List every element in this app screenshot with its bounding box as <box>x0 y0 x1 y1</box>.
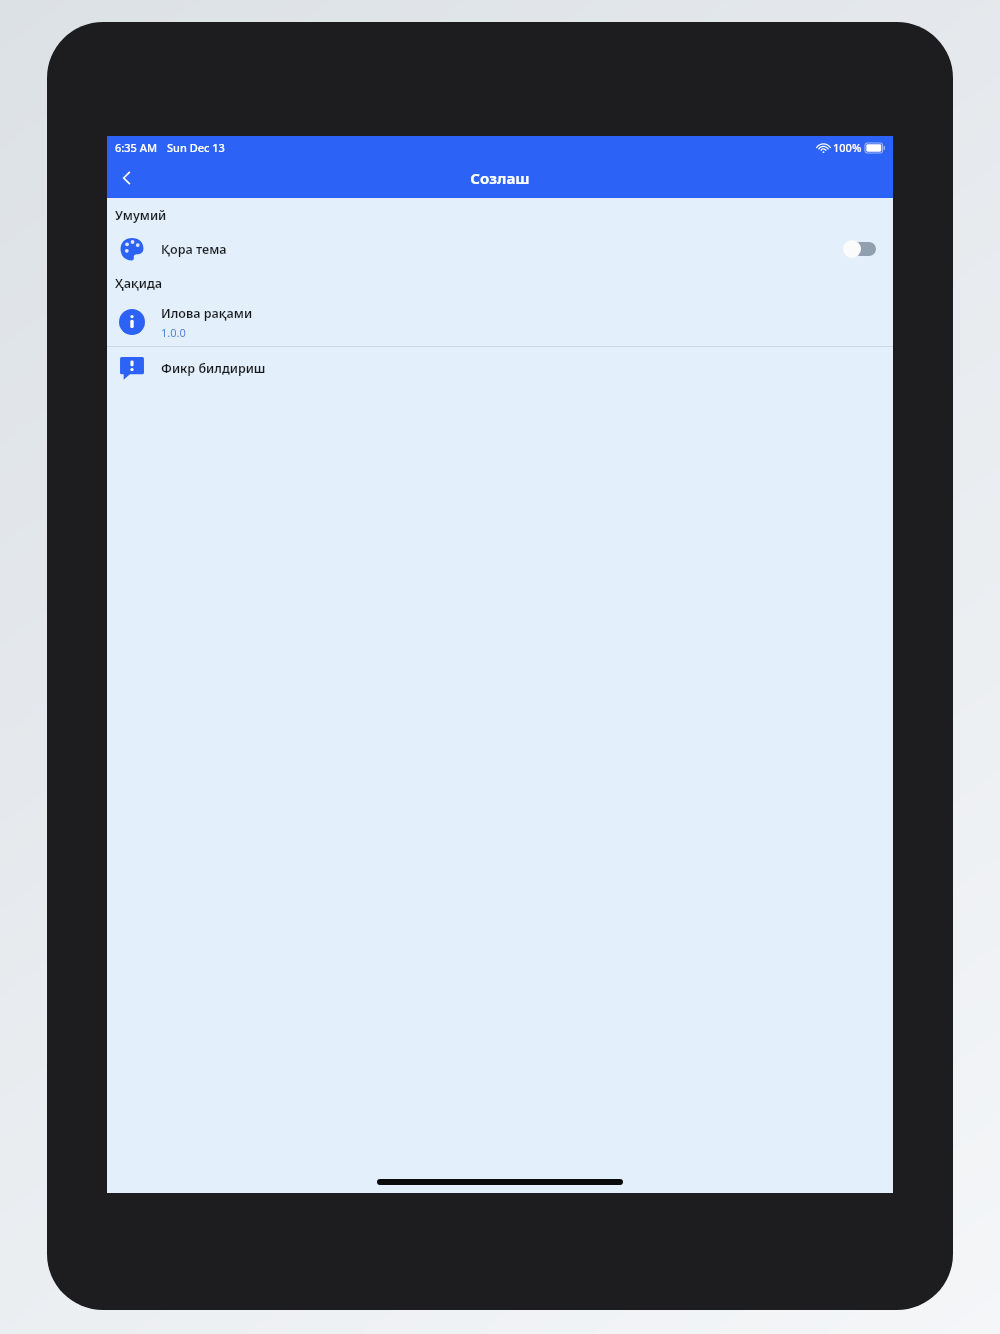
button[interactable]: Фикр билдириш <box>107 347 893 389</box>
staticText: Фикр билдириш <box>161 360 266 377</box>
staticText: Қора тема <box>161 241 227 258</box>
staticText: 1.0.0 <box>161 325 186 340</box>
button[interactable]: Илова рақами <box>107 298 893 346</box>
staticText: Умумий <box>115 207 167 224</box>
staticText: 6:35 AM <box>115 140 158 155</box>
button[interactable]: Back <box>107 158 147 198</box>
staticText: Илова рақами <box>161 305 253 322</box>
staticText: Ҳақида <box>115 275 163 292</box>
staticText: Sun Dec 13 <box>167 140 225 155</box>
staticText: Созлаш <box>470 168 530 188</box>
button[interactable]: Қора тема <box>107 230 893 268</box>
button[interactable]: Dark theme toggle <box>843 240 879 258</box>
staticText: 100% <box>833 140 862 155</box>
